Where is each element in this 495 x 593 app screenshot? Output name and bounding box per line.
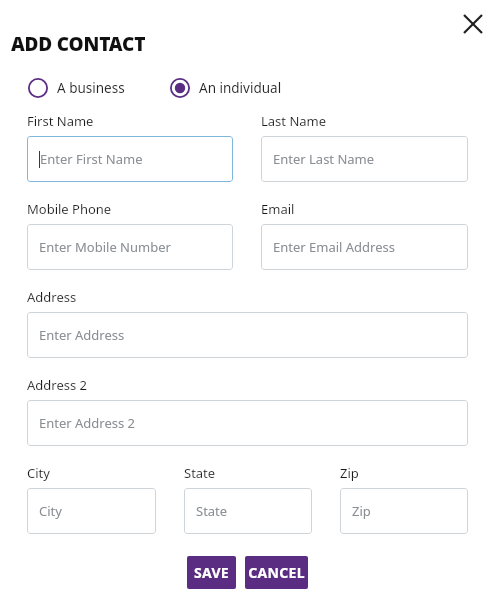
staticText: City: [39, 502, 62, 520]
staticText: Enter Last Name: [273, 150, 375, 168]
button[interactable]: CANCEL: [245, 556, 308, 589]
button[interactable]: An individual: [170, 78, 282, 98]
button[interactable]: Close: [457, 8, 489, 40]
button[interactable]: Enter Address 2: [27, 400, 468, 446]
staticText: Mobile Phone: [27, 200, 112, 218]
staticText: City: [27, 464, 50, 482]
button[interactable]: SAVE: [187, 556, 236, 589]
staticText: A business: [57, 79, 125, 97]
staticText: Address: [27, 288, 77, 306]
staticText: Email: [261, 200, 295, 218]
button[interactable]: Enter Last Name: [261, 136, 468, 182]
button[interactable]: Zip: [340, 488, 468, 534]
staticText: Zip: [352, 502, 371, 520]
staticText: Zip: [340, 464, 359, 482]
button[interactable]: Enter Mobile Number: [27, 224, 233, 270]
staticText: Enter Address 2: [39, 414, 136, 432]
staticText: State: [196, 502, 228, 520]
staticText: Address 2: [27, 376, 88, 394]
staticText: Enter Address: [39, 326, 125, 344]
button[interactable]: Enter Address: [27, 312, 468, 358]
button[interactable]: City: [27, 488, 156, 534]
button[interactable]: Enter Email Address: [261, 224, 468, 270]
staticText: CANCEL: [248, 563, 305, 582]
staticText: Enter Mobile Number: [39, 238, 171, 256]
staticText: First Name: [27, 112, 94, 130]
staticText: Enter First Name: [40, 150, 143, 168]
staticText: SAVE: [194, 563, 229, 582]
staticText: Enter Email Address: [273, 238, 395, 256]
staticText: An individual: [199, 79, 282, 97]
button[interactable]: A business: [28, 78, 125, 98]
button[interactable]: Enter First Name: [27, 136, 233, 182]
button[interactable]: State: [184, 488, 312, 534]
staticText: ADD CONTACT: [11, 31, 146, 57]
staticText: State: [184, 464, 216, 482]
staticText: Last Name: [261, 112, 327, 130]
